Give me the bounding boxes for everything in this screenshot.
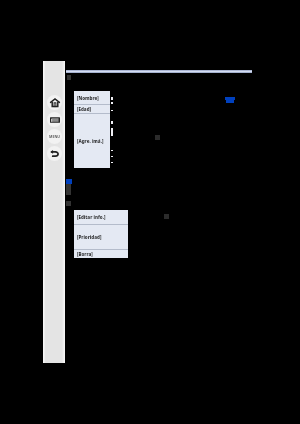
button[interactable]: [Editar info.] xyxy=(74,210,128,224)
button[interactable]: [Prioridad] xyxy=(74,225,128,249)
staticText: [Agre. imá.] xyxy=(77,138,104,144)
staticText: [Borra] xyxy=(77,251,93,257)
button[interactable]: [Agre. imá.] xyxy=(74,114,110,168)
staticText: MENU xyxy=(49,134,61,139)
staticText: [Prioridad] xyxy=(77,234,102,240)
button[interactable]: [Borra] xyxy=(74,250,128,258)
button[interactable]: Back xyxy=(47,146,62,161)
button[interactable]: [Edad] xyxy=(74,105,110,113)
staticText: [Nombre] xyxy=(77,95,99,101)
staticText: [Edad] xyxy=(77,106,91,112)
button[interactable]: [Nombre] xyxy=(74,91,110,104)
button[interactable]: Recent screens xyxy=(47,112,62,127)
button[interactable]: Home xyxy=(47,95,62,110)
staticText: [Editar info.] xyxy=(77,214,106,220)
button[interactable]: Menu xyxy=(47,129,62,144)
